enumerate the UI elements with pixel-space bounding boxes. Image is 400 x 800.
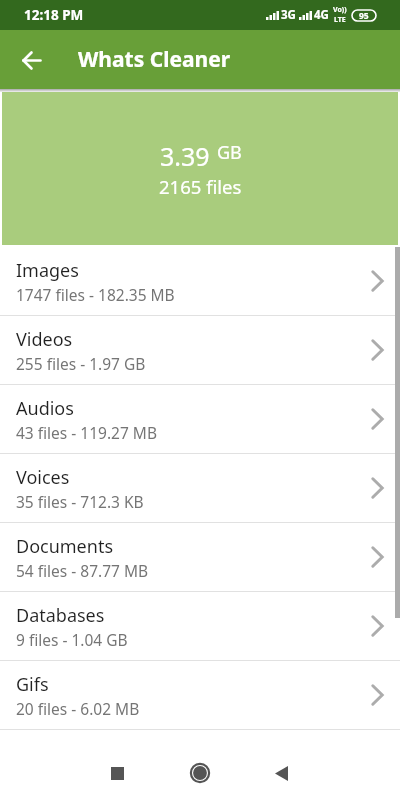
- button[interactable]: Voices: [0, 454, 400, 522]
- button[interactable]: Gifs: [0, 661, 400, 729]
- staticText: Whats Cleaner: [78, 45, 231, 74]
- staticText: 9 files - 1.04 GB: [16, 629, 128, 650]
- staticText: 3.39: [160, 139, 210, 173]
- staticText: 20 files - 6.02 MB: [16, 698, 140, 719]
- staticText: Vo)): [333, 5, 347, 15]
- staticText: 1747 files - 182.35 MB: [16, 284, 175, 305]
- staticText: Voices: [16, 465, 70, 490]
- staticText: LTE: [334, 15, 346, 25]
- staticText: 54 files - 87.77 MB: [16, 560, 149, 581]
- button[interactable]: [14, 42, 50, 78]
- button[interactable]: 3.39: [2, 92, 398, 245]
- button[interactable]: Images: [0, 247, 400, 315]
- staticText: GB: [217, 140, 242, 165]
- button[interactable]: Databases: [0, 592, 400, 660]
- staticText: 95: [359, 10, 369, 21]
- staticText: Images: [16, 258, 79, 283]
- staticText: 4G: [314, 7, 329, 23]
- staticText: Videos: [16, 327, 73, 352]
- staticText: 255 files - 1.97 GB: [16, 353, 146, 374]
- staticText: Databases: [16, 603, 105, 628]
- staticText: Gifs: [16, 672, 49, 697]
- button[interactable]: [253, 746, 309, 800]
- button[interactable]: Documents: [0, 523, 400, 591]
- button[interactable]: Videos: [0, 316, 400, 384]
- button[interactable]: Audios: [0, 385, 400, 453]
- staticText: 2165 files: [159, 174, 242, 199]
- staticText: 3G: [281, 7, 296, 23]
- staticText: 12:18 PM: [24, 6, 84, 24]
- button[interactable]: [89, 746, 145, 800]
- staticText: Audios: [16, 396, 74, 421]
- staticText: Documents: [16, 534, 114, 559]
- staticText: 35 files - 712.3 KB: [16, 491, 144, 512]
- button[interactable]: [172, 746, 228, 800]
- staticText: 43 files - 119.27 MB: [16, 422, 157, 443]
